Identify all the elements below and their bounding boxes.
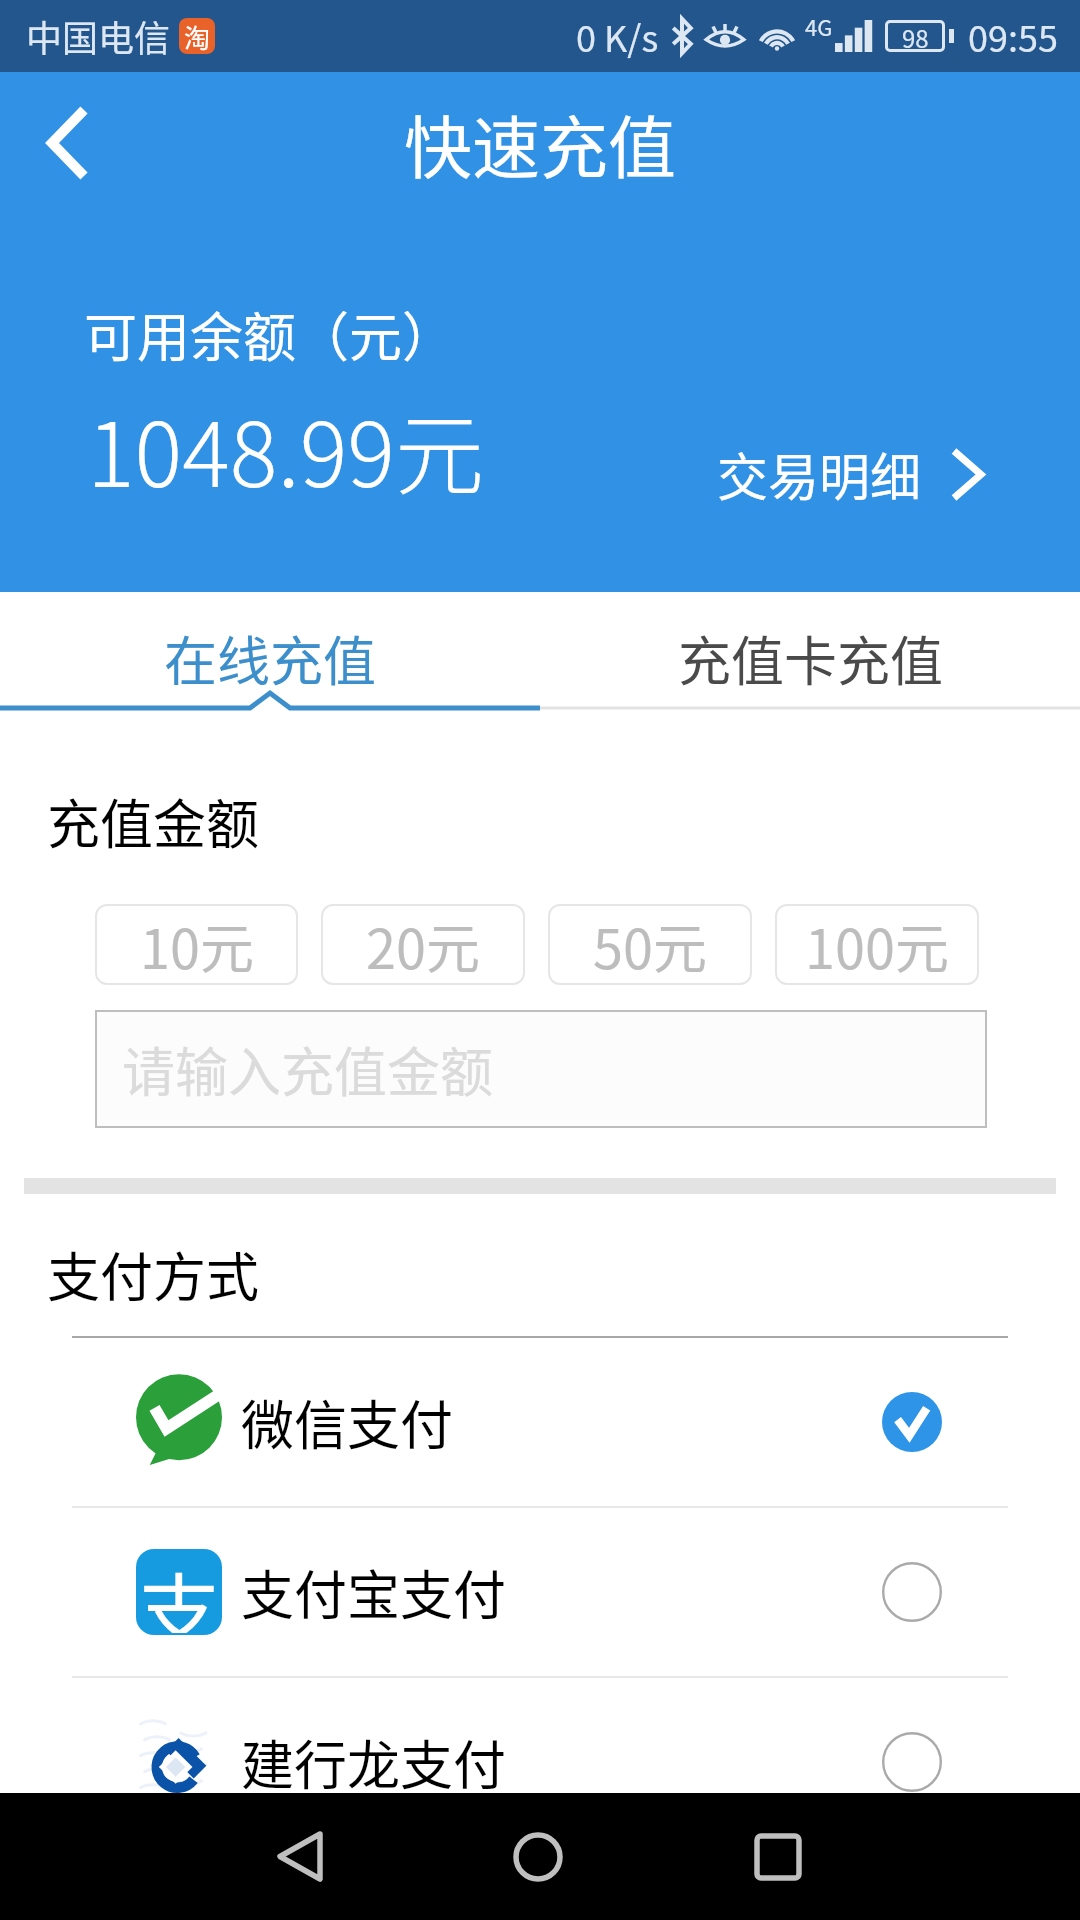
staticText: 支 xyxy=(138,1549,221,1633)
staticText: 充值卡充值 xyxy=(678,620,943,697)
staticText: 充值金额 xyxy=(47,783,259,860)
button[interactable]: 请输入充值金额 xyxy=(95,1010,987,1128)
staticText: 建行龙支付 xyxy=(241,1724,506,1801)
staticText: 在线充值 xyxy=(164,620,376,697)
button[interactable]: 20元 xyxy=(321,904,525,985)
button[interactable]: Home xyxy=(478,1793,598,1920)
button[interactable]: Back xyxy=(20,95,116,191)
button[interactable]: Recents xyxy=(718,1793,838,1920)
staticText: 0 K/s xyxy=(576,10,659,62)
button[interactable]: 充值卡充值 xyxy=(540,592,1080,716)
button[interactable]: 交易明细 xyxy=(717,427,981,521)
staticText: 98 xyxy=(902,20,929,52)
staticText: 请输入充值金额 xyxy=(122,1031,493,1108)
button[interactable]: 建行龙支付 xyxy=(0,1678,1080,1846)
staticText: 20元 xyxy=(366,906,480,984)
button[interactable]: 在线充值 xyxy=(0,592,540,716)
staticText: 1048.99元 xyxy=(87,384,484,513)
staticText: 支付宝支付 xyxy=(241,1554,506,1631)
staticText: 中国电信 xyxy=(26,10,171,62)
button[interactable]: 微信支付 xyxy=(0,1338,1080,1506)
button[interactable]: 10元 xyxy=(95,904,298,985)
staticText: 淘 xyxy=(184,18,211,54)
staticText: 50元 xyxy=(593,906,707,984)
staticText: 09:55 xyxy=(968,10,1058,62)
button[interactable]: 支 xyxy=(0,1508,1080,1676)
button[interactable]: 100元 xyxy=(775,904,979,985)
staticText: 微信支付 xyxy=(241,1384,453,1461)
button[interactable]: 50元 xyxy=(548,904,752,985)
staticText: 快速充值 xyxy=(404,94,677,192)
staticText: 4G xyxy=(805,10,833,42)
button[interactable]: Back xyxy=(240,1793,360,1920)
staticText: 10元 xyxy=(140,906,254,984)
staticText: 可用余额（元） xyxy=(84,296,455,373)
staticText: 交易明细 xyxy=(717,437,922,511)
staticText: 100元 xyxy=(805,906,949,984)
staticText: 支付方式 xyxy=(47,1236,259,1313)
